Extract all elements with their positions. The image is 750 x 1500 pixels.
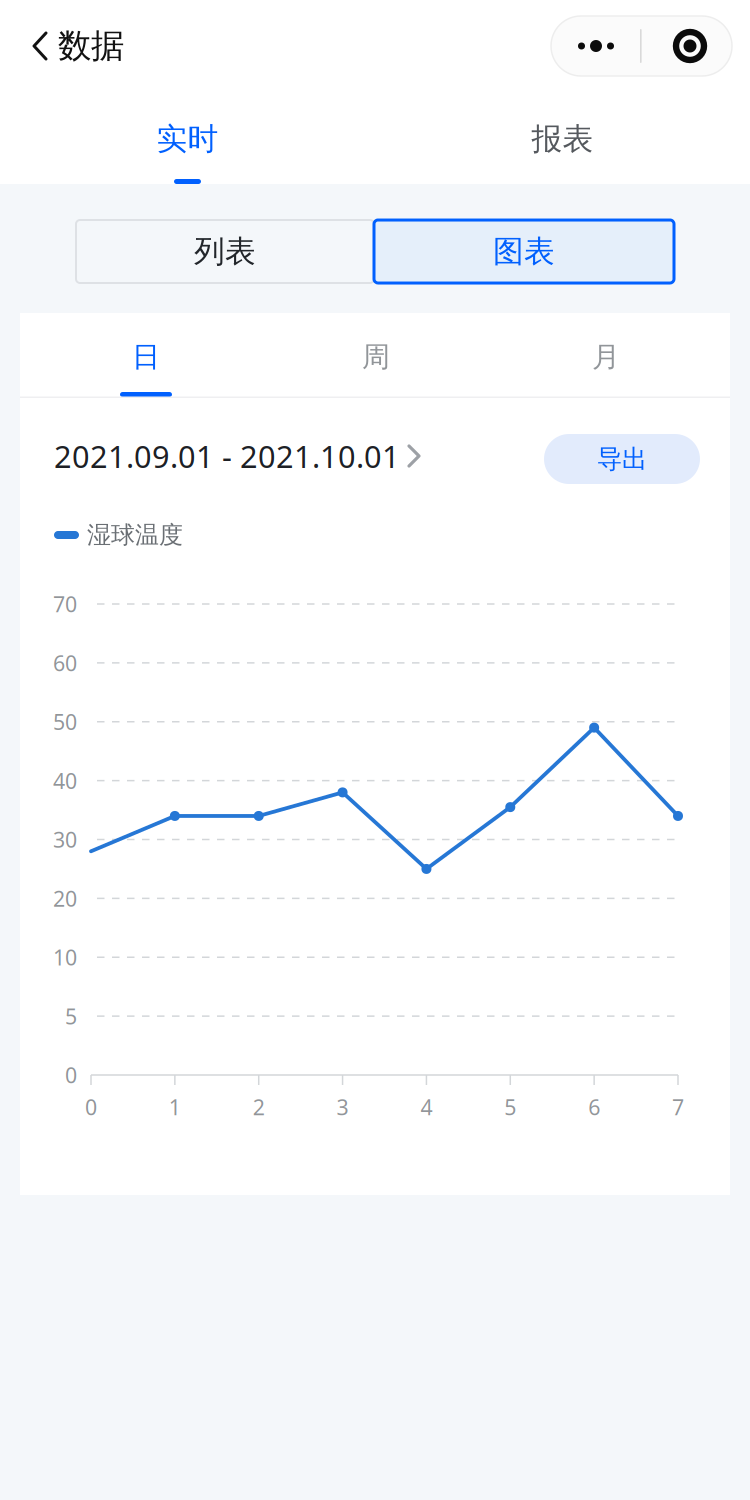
- button[interactable]: 2021.09.01 - 2021.10.01: [20, 417, 470, 495]
- button[interactable]: 月: [491, 313, 721, 397]
- staticText: 0: [85, 1093, 97, 1121]
- staticText: 7: [672, 1093, 684, 1121]
- staticText: 月: [592, 340, 620, 374]
- staticText: 30: [53, 825, 77, 854]
- staticText: 湿球温度: [87, 520, 183, 550]
- staticText: 60: [53, 649, 77, 677]
- button[interactable]: 周: [261, 313, 491, 397]
- staticText: 0: [65, 1061, 77, 1089]
- staticText: 2: [253, 1093, 265, 1121]
- staticText: 40: [53, 766, 77, 795]
- button[interactable]: More options and close: [551, 16, 732, 76]
- staticText: 周: [362, 340, 390, 374]
- staticText: 6: [588, 1093, 600, 1121]
- staticText: 日: [132, 340, 160, 374]
- staticText: 3: [337, 1093, 349, 1121]
- staticText: 导出: [597, 443, 647, 474]
- staticText: 报表: [531, 120, 593, 158]
- staticText: 数据: [58, 25, 124, 66]
- button[interactable]: 数据: [0, 0, 124, 92]
- button[interactable]: 实时: [0, 92, 375, 184]
- staticText: 10: [53, 943, 77, 971]
- staticText: 20: [53, 884, 77, 912]
- button[interactable]: 日: [31, 313, 261, 397]
- staticText: 图表: [493, 233, 555, 270]
- staticText: 实时: [156, 120, 218, 158]
- staticText: 4: [420, 1093, 432, 1121]
- staticText: 1: [169, 1093, 181, 1121]
- button[interactable]: 报表: [375, 92, 750, 184]
- staticText: 50: [53, 708, 77, 736]
- staticText: 2021.09.01 - 2021.10.01: [54, 436, 400, 476]
- staticText: 列表: [194, 233, 256, 270]
- button[interactable]: 图表: [374, 220, 674, 283]
- staticText: 70: [53, 590, 77, 618]
- button[interactable]: 导出: [544, 434, 700, 484]
- button[interactable]: 列表: [76, 220, 374, 283]
- staticText: 5: [504, 1093, 516, 1121]
- staticText: 5: [65, 1002, 77, 1030]
